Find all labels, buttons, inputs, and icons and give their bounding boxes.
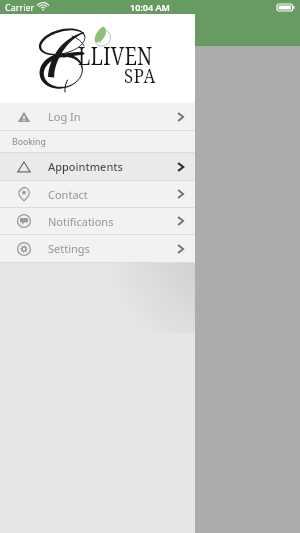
staticText: Carrier — [5, 1, 35, 13]
button[interactable]: Appointments — [0, 153, 195, 180]
staticText: Contact — [48, 187, 88, 202]
staticText: LLIVEN — [78, 38, 153, 72]
button[interactable]: Notifications — [0, 208, 195, 234]
staticText: Appointments — [48, 159, 123, 174]
button[interactable]: Log In — [0, 103, 195, 130]
staticText: 10:04 AM — [130, 1, 170, 13]
staticText: Notifications — [48, 214, 114, 229]
button[interactable]: Contact — [0, 181, 195, 207]
button[interactable]: Settings — [0, 235, 195, 262]
staticText: Log In — [48, 109, 81, 124]
staticText: Booking — [12, 136, 46, 148]
staticText: Settings — [48, 241, 90, 256]
staticText: SPA — [124, 62, 156, 89]
